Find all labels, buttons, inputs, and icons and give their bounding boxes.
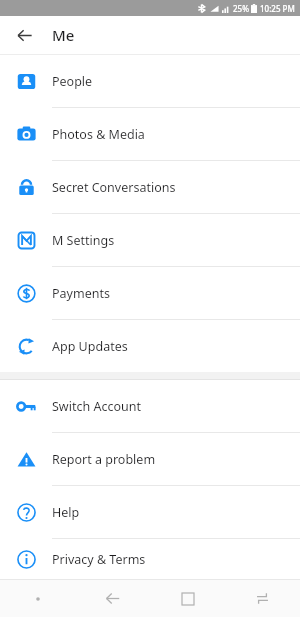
- staticText: Switch Account: [52, 398, 141, 415]
- button[interactable]: People: [0, 55, 300, 108]
- staticText: Photos & Media: [52, 126, 145, 143]
- staticText: Help: [52, 504, 80, 521]
- staticText: 25%: [233, 3, 249, 14]
- button[interactable]: Report a problem: [0, 433, 300, 486]
- button[interactable]: Payments: [0, 267, 300, 320]
- button[interactable]: M Settings: [0, 214, 300, 267]
- staticText: Report a problem: [52, 451, 156, 468]
- button[interactable]: Help: [0, 486, 300, 539]
- button[interactable]: Secret Conversations: [0, 161, 300, 214]
- button[interactable]: Back: [75, 580, 150, 617]
- staticText: Payments: [52, 285, 110, 302]
- staticText: Me: [52, 25, 75, 45]
- button[interactable]: Home: [150, 580, 225, 617]
- button[interactable]: Recents: [225, 580, 300, 617]
- button[interactable]: Photos & Media: [0, 108, 300, 161]
- button[interactable]: Privacy & Terms: [0, 539, 300, 579]
- staticText: Privacy & Terms: [52, 551, 146, 568]
- button[interactable]: App Updates: [0, 320, 300, 372]
- staticText: Secret Conversations: [52, 179, 176, 196]
- staticText: 10:25 PM: [260, 3, 295, 14]
- staticText: M Settings: [52, 232, 115, 249]
- button[interactable]: Switch Account: [0, 380, 300, 433]
- staticText: People: [52, 73, 93, 90]
- staticText: App Updates: [52, 338, 128, 355]
- button[interactable]: Back: [8, 19, 40, 51]
- button[interactable]: Menu: [0, 580, 75, 617]
